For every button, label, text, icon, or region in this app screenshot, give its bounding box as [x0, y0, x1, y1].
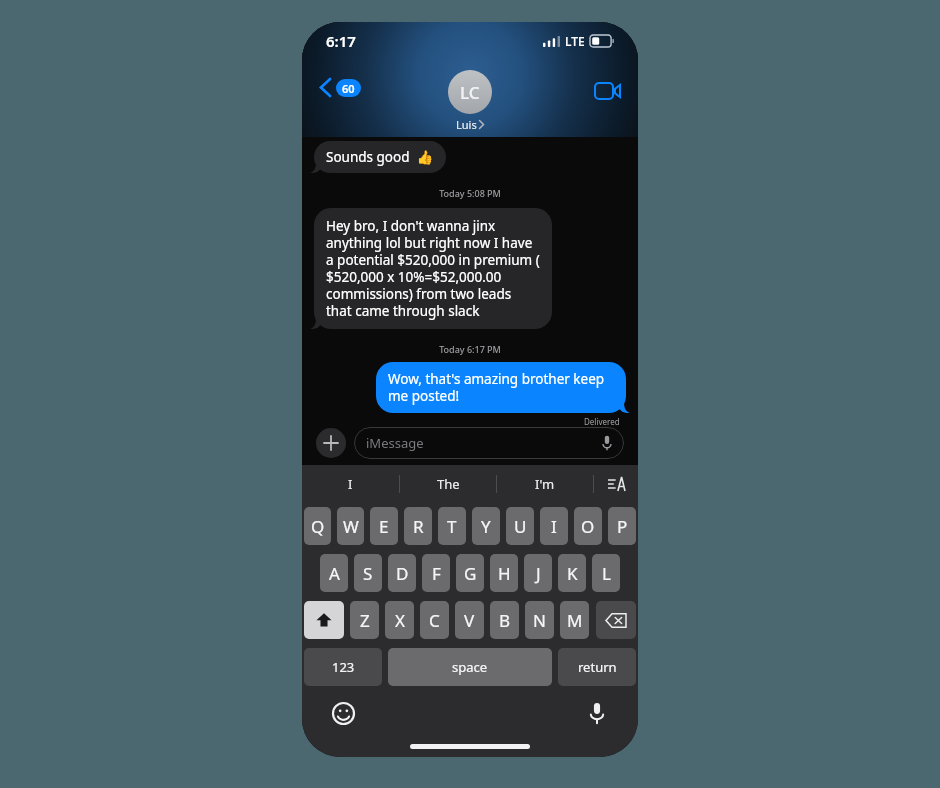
- staticText: I: [551, 515, 557, 538]
- button[interactable]: E: [370, 507, 398, 545]
- staticText: C: [429, 609, 440, 632]
- button[interactable]: D: [388, 554, 416, 592]
- staticText: M: [567, 609, 583, 632]
- button[interactable]: S: [354, 554, 382, 592]
- staticText: 60: [342, 81, 355, 96]
- button[interactable]: H: [490, 554, 518, 592]
- button[interactable]: B: [490, 601, 519, 639]
- staticText: LTE: [565, 33, 585, 49]
- button[interactable]: I: [540, 507, 568, 545]
- button[interactable]: Z: [350, 601, 379, 639]
- button[interactable]: return: [558, 648, 636, 686]
- button[interactable]: Back, 60 unread: [316, 74, 365, 101]
- staticText: Y: [481, 515, 491, 538]
- button[interactable]: R: [404, 507, 432, 545]
- button[interactable]: Dictation: [582, 698, 612, 728]
- button[interactable]: M: [560, 601, 589, 639]
- staticText: E: [379, 515, 389, 538]
- staticText: D: [396, 562, 409, 585]
- button[interactable]: L: [592, 554, 620, 592]
- staticText: H: [498, 562, 511, 585]
- button[interactable]: Wow, that's amazing brother keep me post…: [376, 362, 626, 413]
- button[interactable]: I'm: [497, 465, 593, 503]
- button[interactable]: Text formatting: [594, 465, 638, 503]
- button[interactable]: space: [388, 648, 552, 686]
- staticText: iMessage: [366, 434, 424, 452]
- staticText: Hey bro, I don't wanna jinx anything lol…: [326, 217, 540, 320]
- staticText: return: [578, 658, 617, 676]
- staticText: Wow, that's amazing brother keep me post…: [388, 370, 614, 405]
- button[interactable]: K: [558, 554, 586, 592]
- staticText: A: [329, 562, 340, 585]
- staticText: O: [581, 515, 595, 538]
- button[interactable]: Sounds good 👍: [314, 141, 446, 173]
- button[interactable]: N: [525, 601, 554, 639]
- staticText: K: [567, 562, 578, 585]
- staticText: I'm: [535, 475, 555, 493]
- button[interactable]: Y: [472, 507, 500, 545]
- button[interactable]: V: [455, 601, 484, 639]
- button[interactable]: A: [320, 554, 348, 592]
- staticText: N: [533, 609, 546, 632]
- button[interactable]: Emoji keyboard: [328, 698, 358, 728]
- staticText: W: [343, 515, 359, 538]
- staticText: P: [617, 515, 628, 538]
- button[interactable]: Hey bro, I don't wanna jinx anything lol…: [314, 208, 552, 329]
- staticText: T: [447, 515, 457, 538]
- staticText: I: [348, 475, 353, 493]
- button[interactable]: I: [302, 465, 399, 503]
- staticText: J: [536, 562, 541, 585]
- button[interactable]: F: [422, 554, 450, 592]
- staticText: G: [464, 562, 477, 585]
- staticText: V: [464, 609, 475, 632]
- button[interactable]: T: [438, 507, 466, 545]
- button[interactable]: 123: [304, 648, 382, 686]
- staticText: S: [363, 562, 373, 585]
- button[interactable]: G: [456, 554, 484, 592]
- button[interactable]: Q: [304, 507, 331, 545]
- staticText: Q: [311, 515, 325, 538]
- button[interactable]: Add attachment: [316, 428, 346, 458]
- button[interactable]: FaceTime video call: [590, 74, 624, 108]
- button[interactable]: LC: [440, 68, 500, 134]
- staticText: Today 6:17 PM: [439, 343, 501, 355]
- staticText: X: [395, 609, 405, 632]
- staticText: Luis: [456, 117, 477, 132]
- button[interactable]: X: [385, 601, 414, 639]
- button[interactable]: The: [400, 465, 496, 503]
- staticText: Z: [360, 609, 370, 632]
- staticText: F: [432, 562, 441, 585]
- staticText: space: [452, 658, 488, 676]
- button[interactable]: W: [337, 507, 364, 545]
- staticText: Delivered: [584, 416, 620, 427]
- staticText: The: [437, 475, 460, 493]
- button[interactable]: P: [608, 507, 636, 545]
- staticText: 123: [332, 658, 355, 676]
- button[interactable]: Shift: [304, 601, 344, 639]
- button[interactable]: C: [420, 601, 449, 639]
- button[interactable]: J: [524, 554, 552, 592]
- staticText: Sounds good 👍: [326, 148, 434, 166]
- staticText: Today 5:08 PM: [439, 187, 501, 199]
- button[interactable]: O: [574, 507, 602, 545]
- staticText: U: [514, 515, 527, 538]
- staticText: L: [602, 562, 611, 585]
- button[interactable]: iMessage: [354, 427, 624, 459]
- staticText: R: [413, 515, 424, 538]
- staticText: 6:17: [326, 31, 356, 51]
- button[interactable]: U: [506, 507, 534, 545]
- staticText: LC: [460, 81, 480, 104]
- staticText: B: [499, 609, 511, 632]
- button[interactable]: Backspace: [596, 601, 636, 639]
